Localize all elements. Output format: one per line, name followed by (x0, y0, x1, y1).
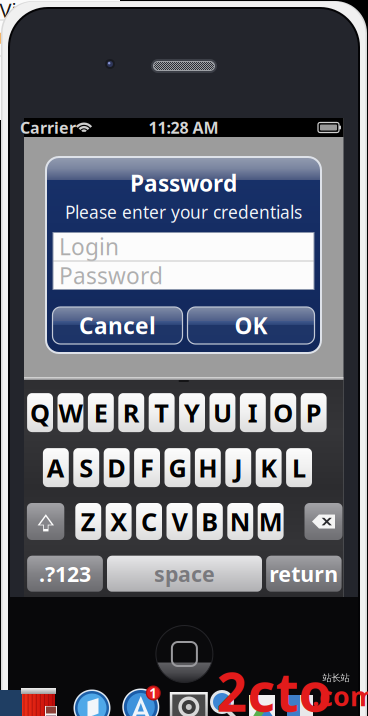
button[interactable]: Z (75, 503, 101, 540)
staticText: X (110, 505, 127, 538)
staticText: Q (30, 396, 50, 429)
staticText: B (201, 505, 218, 538)
staticText: W (58, 396, 82, 429)
staticText: OK (234, 310, 267, 340)
staticText: 2cto (216, 656, 331, 716)
staticText: S (79, 451, 93, 484)
staticText: 站长站 (322, 672, 349, 684)
button[interactable]: Shift (27, 503, 64, 540)
staticText: G (168, 451, 186, 484)
button[interactable]: I (240, 393, 266, 432)
button[interactable]: N (227, 503, 253, 540)
button[interactable]: H (195, 448, 221, 487)
staticText: N (230, 505, 251, 538)
button[interactable]: K (256, 448, 282, 487)
staticText: tView (0, 0, 43, 23)
button[interactable]: T (149, 393, 175, 432)
staticText: L (292, 451, 306, 484)
staticText: D (107, 451, 126, 484)
staticText: J (234, 451, 242, 484)
staticText: 1 (149, 684, 157, 702)
button[interactable]: S (73, 448, 99, 487)
button[interactable]: X (106, 503, 132, 540)
staticText: A (47, 451, 65, 484)
button[interactable]: Cancel (52, 307, 182, 344)
staticText: K (260, 451, 277, 484)
staticText: I (248, 396, 258, 429)
button[interactable]: U (209, 393, 235, 432)
staticText: Password (130, 168, 237, 198)
button[interactable]: M (258, 503, 284, 540)
button[interactable]: L (286, 448, 312, 487)
staticText: Y (184, 396, 200, 429)
staticText: 11:28 AM (148, 117, 218, 138)
staticText: space (154, 559, 215, 588)
staticText: T (154, 396, 169, 429)
staticText: R (123, 396, 140, 429)
button[interactable]: R (118, 393, 144, 432)
staticText: Carrier (20, 117, 76, 138)
staticText: n (0, 23, 11, 49)
button[interactable]: W (57, 393, 83, 432)
button[interactable]: J (225, 448, 251, 487)
button[interactable]: D (104, 448, 130, 487)
staticText: E (94, 396, 108, 429)
staticText: Z (81, 505, 96, 538)
button[interactable]: P (301, 393, 327, 432)
staticText: P (306, 396, 322, 429)
button[interactable]: A (43, 448, 69, 487)
button[interactable]: Q (27, 393, 53, 432)
staticText: .?123 (39, 559, 91, 588)
button[interactable]: Login (53, 232, 314, 260)
staticText: H (198, 451, 217, 484)
staticText: Login (59, 231, 119, 261)
staticText: Please enter your credentials (65, 200, 302, 223)
button[interactable]: F (134, 448, 160, 487)
button[interactable]: Password (53, 261, 314, 289)
staticText: Cancel (79, 310, 156, 340)
button[interactable]: C (136, 503, 162, 540)
button[interactable]: E (88, 393, 114, 432)
button[interactable]: Delete (304, 503, 342, 540)
staticText: O (273, 396, 293, 429)
button[interactable]: return (266, 556, 342, 592)
staticText: C (141, 505, 157, 538)
button[interactable]: space (107, 556, 262, 592)
staticText: F (140, 451, 154, 484)
button[interactable]: V (166, 503, 192, 540)
button[interactable]: OK (187, 307, 314, 344)
button[interactable]: B (197, 503, 223, 540)
button[interactable]: .?123 (27, 556, 103, 592)
staticText: Password (59, 260, 163, 290)
staticText: M (259, 505, 283, 538)
staticText: .com (312, 678, 368, 714)
button[interactable]: G (164, 448, 190, 487)
button[interactable]: O (270, 393, 296, 432)
button[interactable]: Y (179, 393, 205, 432)
staticText: return (269, 559, 338, 588)
staticText: V (171, 505, 187, 538)
staticText: U (213, 396, 232, 429)
